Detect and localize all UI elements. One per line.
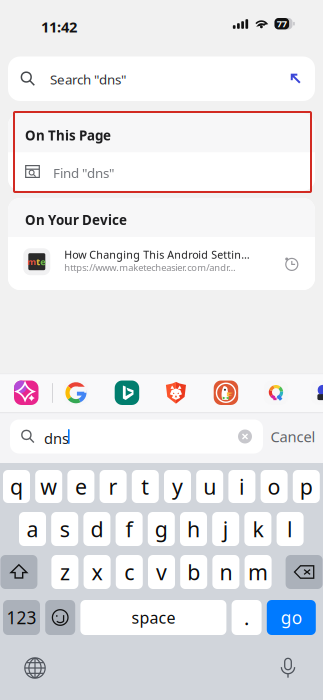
staticText: e <box>75 472 87 501</box>
button[interactable]: m <box>8 238 315 290</box>
staticText: . <box>244 604 249 631</box>
button[interactable]: Shift <box>0 555 37 589</box>
staticText: o <box>268 472 281 501</box>
button[interactable]: g <box>148 512 175 546</box>
staticText: On This Page <box>25 126 111 144</box>
button[interactable]: space <box>80 600 226 635</box>
button[interactable]: y <box>164 470 191 503</box>
staticText: c <box>124 558 134 586</box>
staticText: n <box>219 558 232 586</box>
button[interactable]: Switch keyboard <box>20 655 50 681</box>
staticText: On Your Device <box>25 211 127 229</box>
staticText: https://www.maketecheasier.com/andr… <box>64 261 235 274</box>
button[interactable]: s <box>51 512 78 546</box>
staticText: t <box>36 255 40 268</box>
staticText: Find "dns" <box>53 164 114 182</box>
staticText: k <box>252 515 263 543</box>
staticText: g <box>155 515 168 543</box>
button[interactable]: x <box>84 555 111 589</box>
staticText: Cancel <box>270 427 315 446</box>
button[interactable]: z <box>51 555 78 589</box>
button[interactable]: . <box>232 600 262 635</box>
staticText: p <box>300 472 313 501</box>
staticText: i <box>239 472 245 501</box>
staticText: 77 <box>277 17 287 30</box>
button[interactable]: AI search <box>14 380 38 405</box>
button[interactable]: c <box>116 555 143 589</box>
button[interactable]: 123 <box>3 600 40 635</box>
button[interactable]: v <box>148 555 175 589</box>
staticText: t <box>141 472 149 501</box>
staticText: a <box>26 515 38 543</box>
button[interactable]: k <box>244 512 271 546</box>
button[interactable]: m <box>245 555 272 589</box>
staticText: u <box>203 472 216 501</box>
button[interactable]: j <box>212 512 239 546</box>
staticText: q <box>10 472 23 501</box>
staticText: 11:42 <box>41 17 77 36</box>
button[interactable]: o <box>261 470 288 503</box>
staticText: x <box>92 558 103 586</box>
button[interactable]: w <box>35 470 62 503</box>
button[interactable]: d <box>83 512 110 546</box>
button[interactable]: Bing <box>115 380 139 405</box>
staticText: b <box>187 558 200 586</box>
button[interactable]: Search "dns" <box>8 56 315 101</box>
button[interactable]: Cancel <box>269 419 317 453</box>
button[interactable]: h <box>180 512 207 546</box>
button[interactable]: Dictate <box>273 655 303 681</box>
button[interactable]: i <box>228 470 255 503</box>
staticText: r <box>109 472 118 501</box>
staticText: s <box>60 515 70 543</box>
staticText: How Changing This Android Settin… <box>64 248 249 262</box>
button[interactable]: b <box>180 555 207 589</box>
staticText: space <box>131 607 175 628</box>
button[interactable]: Find "dns" <box>8 152 315 190</box>
button[interactable]: dns <box>10 419 263 453</box>
button[interactable]: u <box>196 470 223 503</box>
staticText: d <box>90 515 103 543</box>
button[interactable]: r <box>100 470 127 503</box>
staticText: f <box>126 515 133 543</box>
staticText: h <box>187 515 200 543</box>
staticText: Search "dns" <box>50 70 126 88</box>
button[interactable]: Google <box>64 380 88 405</box>
button[interactable]: Qwant <box>264 380 288 405</box>
staticText: 123 <box>6 606 36 629</box>
button[interactable]: DuckDuckGo <box>214 380 238 405</box>
staticText: w <box>40 472 57 501</box>
staticText: m <box>248 558 268 586</box>
button[interactable]: t <box>132 470 159 503</box>
staticText: go <box>281 606 302 629</box>
staticText: v <box>156 558 167 586</box>
staticText: e <box>40 255 46 268</box>
button[interactable]: go <box>267 600 316 635</box>
staticText: dns <box>44 428 69 448</box>
button[interactable]: l <box>277 512 304 546</box>
button[interactable]: Emoji <box>45 600 75 635</box>
button[interactable]: Brave <box>164 380 188 405</box>
staticText: j <box>223 515 229 543</box>
staticText: l <box>287 515 293 543</box>
staticText: y <box>172 472 183 501</box>
staticText: m <box>27 255 36 268</box>
button[interactable]: q <box>3 470 30 503</box>
button[interactable]: p <box>293 470 320 503</box>
button[interactable]: Startpage <box>311 380 323 405</box>
button[interactable]: Delete <box>286 555 323 589</box>
button[interactable]: f <box>116 512 143 546</box>
staticText: z <box>60 558 70 586</box>
button[interactable]: n <box>212 555 239 589</box>
button[interactable]: a <box>19 512 46 546</box>
button[interactable]: e <box>67 470 94 503</box>
